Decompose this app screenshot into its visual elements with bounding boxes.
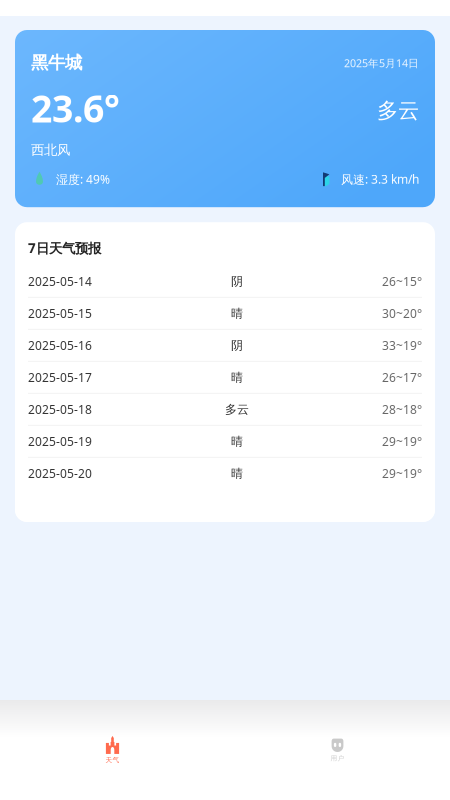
staticText: 用户 [330,754,344,762]
staticText: 湿度: 49% [56,171,110,187]
button[interactable]: 2025-05-20 [15,458,435,490]
staticText: 29~19° [382,433,422,449]
staticText: 26~17° [382,369,422,385]
button[interactable]: 2025-05-17 [15,362,435,394]
button[interactable]: 用户 [225,721,450,779]
staticText: 23.6° [31,83,120,133]
staticText: 2025-05-17 [28,369,92,385]
button[interactable]: 2025-05-15 [15,298,435,330]
staticText: 28~18° [382,401,422,417]
staticText: 风速: 3.3 km/h [341,171,419,187]
staticText: 29~19° [382,465,422,481]
staticText: 晴 [231,466,243,481]
button[interactable]: 2025-05-16 [15,330,435,362]
staticText: 2025年5月14日 [344,56,419,70]
staticText: 晴 [231,306,243,321]
staticText: 晴 [231,370,243,385]
staticText: 2025-05-20 [28,465,92,481]
staticText: 2025-05-18 [28,401,92,417]
button[interactable]: 2025-05-14 [15,266,435,298]
staticText: 30~20° [382,305,422,321]
button[interactable]: 天气 [0,721,225,779]
button[interactable]: 2025-05-19 [15,426,435,458]
staticText: 晴 [231,434,243,449]
staticText: 2025-05-16 [28,337,92,353]
staticText: 多云 [225,402,249,417]
staticText: 2025-05-15 [28,305,92,321]
staticText: 7日天气预报 [28,239,101,257]
staticText: 33~19° [382,337,422,353]
staticText: 2025-05-19 [28,433,92,449]
staticText: 天气 [105,756,119,764]
button[interactable]: 2025-05-18 [15,394,435,426]
staticText: 阴 [231,338,243,353]
staticText: 西北风 [31,142,70,158]
staticText: 阴 [231,274,243,289]
staticText: 黑牛城 [31,52,82,73]
staticText: 26~15° [382,273,422,289]
staticText: 多云 [377,98,419,124]
staticText: 2025-05-14 [28,273,92,289]
